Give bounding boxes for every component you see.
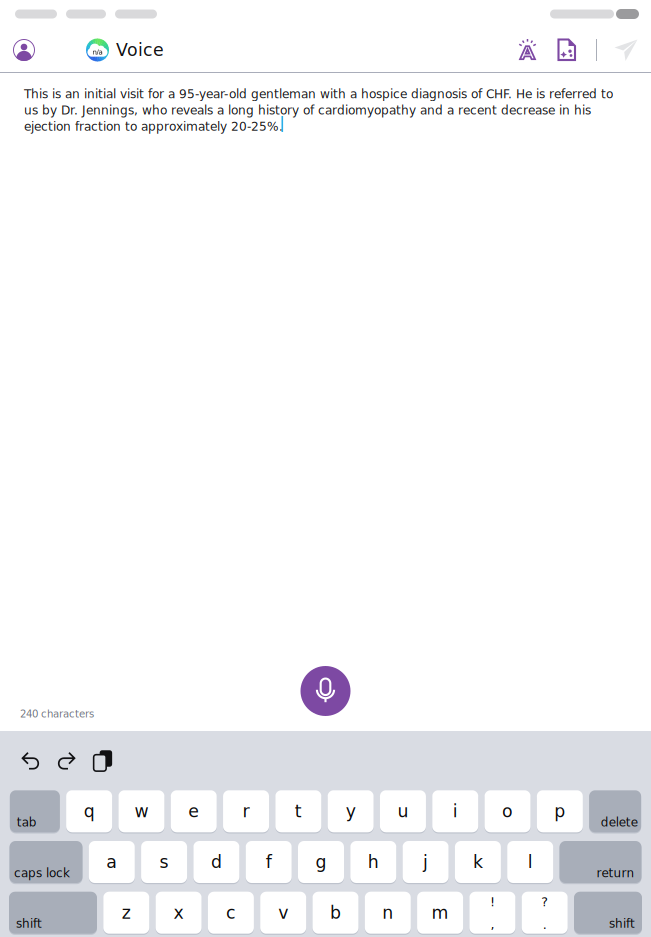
button[interactable]: c <box>208 891 254 934</box>
staticText: This is an initial visit for a 95-year-o… <box>24 86 613 135</box>
button[interactable]: j <box>403 840 449 884</box>
button[interactable]: x <box>156 891 202 934</box>
staticText: n <box>382 903 393 923</box>
staticText: z <box>122 903 131 923</box>
button[interactable]: u <box>380 790 426 833</box>
button[interactable]: Enhance text <box>517 35 538 65</box>
button[interactable]: tab <box>10 790 60 833</box>
staticText: caps lock <box>14 866 70 880</box>
button[interactable]: h <box>350 840 396 884</box>
button[interactable]: i <box>432 790 478 833</box>
staticText: n/a <box>92 48 102 56</box>
staticText: x <box>174 903 184 923</box>
staticText: s <box>160 852 169 872</box>
staticText: g <box>315 852 326 872</box>
button[interactable]: d <box>193 840 239 884</box>
staticText: t <box>295 801 302 821</box>
button[interactable]: t <box>275 790 321 833</box>
staticText: ? <box>541 894 548 909</box>
staticText: shift <box>609 917 635 931</box>
button[interactable]: m <box>417 891 463 934</box>
button[interactable]: v <box>260 891 306 934</box>
button[interactable]: p <box>537 790 583 833</box>
staticText: v <box>278 903 288 923</box>
staticText: i <box>453 801 458 821</box>
button[interactable]: Generate note <box>553 35 581 65</box>
staticText: q <box>84 801 95 821</box>
staticText: r <box>242 801 249 821</box>
staticText: a <box>106 852 117 872</box>
button[interactable]: shift <box>574 891 642 934</box>
staticText: p <box>554 801 565 821</box>
button[interactable]: f <box>246 840 292 884</box>
button[interactable]: Record voice <box>300 666 350 716</box>
button[interactable]: Undo <box>21 751 42 771</box>
staticText: e <box>188 801 199 821</box>
staticText: tab <box>17 815 37 829</box>
button[interactable]: a <box>89 840 135 884</box>
button[interactable]: z <box>103 891 149 934</box>
staticText: w <box>134 801 148 821</box>
button[interactable]: k <box>455 840 501 884</box>
button[interactable]: shift <box>9 891 97 934</box>
staticText: shift <box>16 917 42 931</box>
button[interactable]: Account <box>9 35 39 65</box>
button[interactable]: s <box>141 840 187 884</box>
button[interactable]: b <box>312 891 358 934</box>
staticText: h <box>368 852 379 872</box>
button[interactable]: g <box>298 840 344 884</box>
staticText: k <box>473 852 483 872</box>
staticText: j <box>423 852 428 872</box>
button[interactable]: delete <box>589 790 641 833</box>
button[interactable]: w <box>118 790 164 833</box>
staticText: f <box>266 852 272 872</box>
staticText: b <box>330 903 341 923</box>
button[interactable]: Send <box>611 35 641 65</box>
button[interactable]: y <box>328 790 374 833</box>
staticText: . <box>543 917 547 932</box>
staticText: delete <box>601 815 638 829</box>
button[interactable]: q <box>66 790 112 833</box>
staticText: u <box>397 801 408 821</box>
staticText: l <box>528 852 533 872</box>
staticText: d <box>211 852 222 872</box>
staticText: 240 characters <box>20 708 94 720</box>
staticText: return <box>596 866 634 880</box>
button[interactable]: caps lock <box>9 840 82 884</box>
button[interactable]: l <box>507 840 553 884</box>
staticText: , <box>490 917 494 932</box>
button[interactable]: e <box>171 790 217 833</box>
button[interactable]: n <box>365 891 411 934</box>
button[interactable]: r <box>223 790 269 833</box>
staticText: o <box>502 801 513 821</box>
button[interactable]: Paste <box>92 750 113 771</box>
staticText: Voice <box>116 40 164 60</box>
button[interactable]: o <box>485 790 531 833</box>
staticText: y <box>346 801 356 821</box>
button[interactable]: return <box>559 840 641 884</box>
button[interactable]: ? <box>522 891 568 934</box>
button[interactable]: Redo <box>55 751 76 771</box>
staticText: c <box>226 903 236 923</box>
staticText: ! <box>490 894 495 909</box>
button[interactable]: ! <box>469 891 515 934</box>
staticText: m <box>432 903 449 923</box>
